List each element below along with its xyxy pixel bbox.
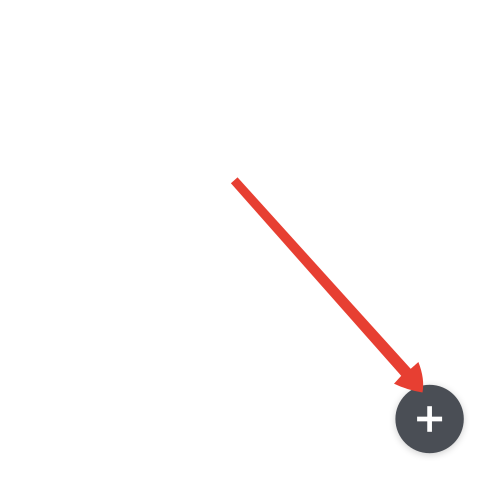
button[interactable]: Add [395, 385, 464, 453]
